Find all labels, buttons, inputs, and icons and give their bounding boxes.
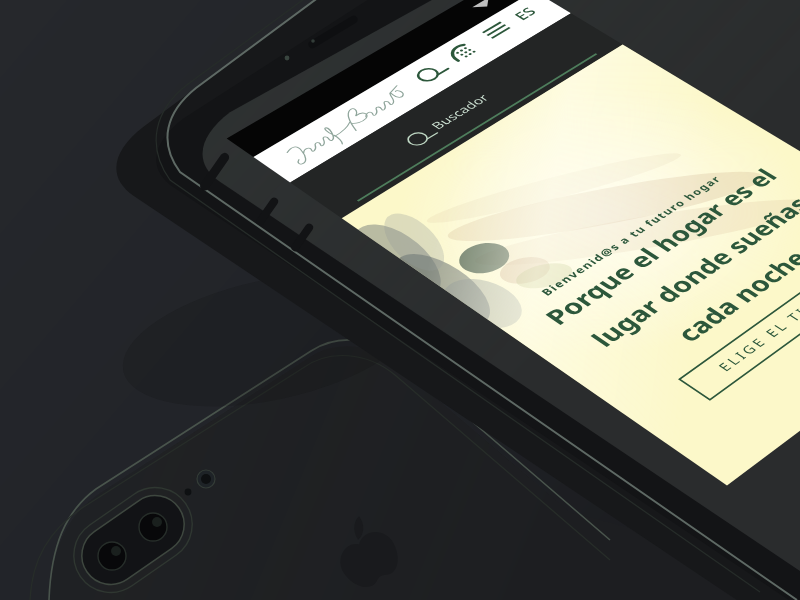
button[interactable]: Phone mockup — [0, 0, 800, 600]
